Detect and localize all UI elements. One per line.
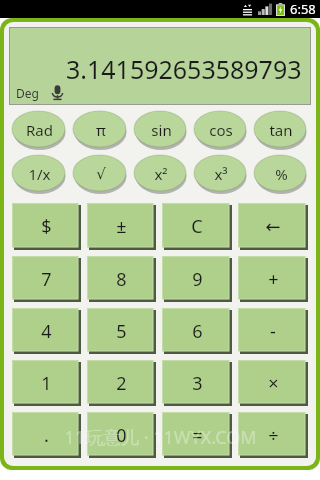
button[interactable]: 1 [12, 360, 81, 406]
staticText: sin [151, 120, 172, 140]
staticText: 7 [41, 267, 52, 292]
button[interactable]: π [73, 111, 128, 150]
staticText: 11玩意儿 · 11WYX.COM [64, 425, 257, 450]
button[interactable]: 5 [87, 308, 156, 354]
staticText: C [191, 214, 203, 239]
staticText: π [96, 120, 106, 140]
staticText: ± [116, 214, 127, 239]
button[interactable]: % [254, 155, 308, 194]
button[interactable]: 9 [162, 256, 232, 302]
staticText: + [268, 267, 279, 292]
button[interactable]: 6 [162, 308, 232, 354]
staticText: 1 [41, 371, 52, 396]
staticText: ÷ [268, 423, 279, 448]
button[interactable]: cos [194, 111, 248, 150]
button[interactable]: x³ [194, 155, 248, 194]
staticText: cos [209, 120, 233, 140]
button[interactable]: $ [12, 203, 81, 250]
button[interactable]: × [238, 360, 308, 406]
staticText: . [44, 423, 49, 448]
staticText: 8 [116, 267, 127, 292]
staticText: 1/x [28, 164, 51, 184]
button[interactable]: 2 [87, 360, 156, 406]
button[interactable]: sin [134, 111, 188, 150]
button[interactable]: = [162, 412, 232, 458]
button[interactable]: Rad [12, 111, 67, 150]
staticText: $ [41, 214, 52, 239]
button[interactable]: - [238, 308, 308, 354]
button[interactable]: 0 [87, 412, 156, 458]
staticText: % [275, 164, 288, 184]
staticText: 4 [41, 319, 52, 344]
button[interactable]: Voice input [49, 84, 66, 101]
staticText: 9 [192, 267, 203, 292]
button[interactable]: 8 [87, 256, 156, 302]
button[interactable]: √ [73, 155, 128, 194]
button[interactable]: 3 [162, 360, 232, 406]
staticText: tan [269, 120, 293, 140]
staticText: 3 [192, 371, 203, 396]
button[interactable]: . [12, 412, 81, 458]
button[interactable]: 4 [12, 308, 81, 354]
staticText: √ [96, 165, 106, 182]
staticText: 2 [116, 371, 127, 396]
staticText: 5 [116, 319, 127, 344]
button[interactable]: tan [254, 111, 308, 150]
staticText: x³ [214, 164, 228, 184]
staticText: - [270, 319, 276, 344]
staticText: 6:58 [290, 0, 316, 18]
button[interactable]: ± [87, 203, 156, 250]
staticText: = [192, 423, 203, 448]
button[interactable]: ← [238, 203, 308, 250]
staticText: 0 [116, 423, 127, 448]
staticText: Deg [16, 85, 39, 101]
button[interactable]: x² [134, 155, 188, 194]
button[interactable]: 1/x [12, 155, 67, 194]
staticText: x² [154, 164, 168, 184]
button[interactable]: C [162, 203, 232, 250]
staticText: 3.141592653589793 [66, 52, 302, 86]
button[interactable]: 7 [12, 256, 81, 302]
button[interactable]: ÷ [238, 412, 308, 458]
staticText: ← [265, 216, 281, 237]
staticText: × [268, 371, 279, 396]
button[interactable]: + [238, 256, 308, 302]
staticText: 6 [192, 319, 203, 344]
staticText: Rad [26, 120, 53, 140]
